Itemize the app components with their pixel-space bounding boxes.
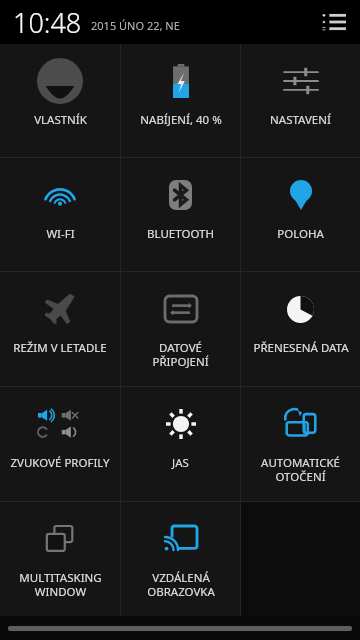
staticText: NABÍJENÍ, 40 %: [140, 112, 222, 128]
staticText: REŽIM V LETADLE: [13, 340, 107, 356]
staticText: POLOHA: [277, 226, 324, 242]
button[interactable]: Quick settings toggle: [315, 4, 351, 40]
button[interactable]: Remote screen: [121, 502, 240, 616]
staticText: 10:48: [13, 4, 82, 41]
button[interactable]: Mobile data: [121, 272, 240, 386]
staticText: DATOVÉ PŘIPOJENÍ: [152, 340, 209, 369]
button[interactable]: Airplane mode: [0, 272, 120, 386]
staticText: JAS: [172, 455, 189, 471]
button[interactable]: Location: [241, 158, 360, 271]
staticText: ZVUKOVÉ PROFILY: [10, 455, 110, 471]
button[interactable]: Sound profiles: [0, 387, 120, 501]
button[interactable]: Bluetooth: [121, 158, 240, 271]
staticText: WI-FI: [46, 226, 75, 242]
button[interactable]: Data usage: [241, 272, 360, 386]
staticText: VLASTNÍK: [34, 112, 87, 128]
button[interactable]: Battery charging: [121, 44, 240, 157]
staticText: MULTITASKING WINDOW: [19, 570, 102, 599]
staticText: NASTAVENÍ: [270, 112, 331, 128]
staticText: PŘENESENÁ DATA: [253, 340, 349, 356]
button[interactable]: Auto rotate: [241, 387, 360, 501]
staticText: BLUETOOTH: [147, 226, 214, 242]
button[interactable]: Brightness: [121, 387, 240, 501]
staticText: AUTOMATICKÉ OTOČENÍ: [261, 455, 340, 484]
button[interactable]: Multitasking window: [0, 502, 120, 616]
button[interactable]: Owner profile: [0, 44, 120, 157]
button[interactable]: Settings: [241, 44, 360, 157]
staticText: VZDÁLENÁ OBRAZOVKA: [147, 570, 215, 599]
button[interactable]: Wi-Fi: [0, 158, 120, 271]
staticText: 2015 ÚNO 22, NE: [91, 18, 180, 33]
